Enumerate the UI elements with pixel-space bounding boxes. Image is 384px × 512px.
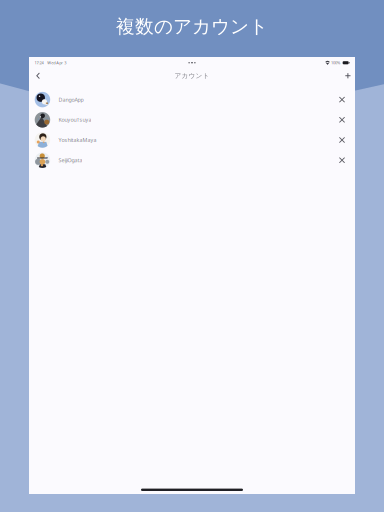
staticText: SeijiOgata [58, 157, 82, 164]
staticText: 複数のアカウント [116, 15, 268, 38]
button[interactable]: KouyouTsuya [29, 110, 355, 130]
staticText: 17:24 [35, 60, 44, 65]
button[interactable]: Add account [340, 69, 354, 83]
button[interactable]: Remove KouyouTsuya [334, 112, 350, 128]
button[interactable]: Back [31, 69, 45, 83]
button[interactable]: DangoApp [29, 89, 355, 110]
staticText: DangoApp [58, 96, 83, 103]
button[interactable]: YoshitakaMaya [29, 130, 355, 150]
staticText: Wed Apr 3 [47, 60, 66, 65]
staticText: YoshitakaMaya [58, 136, 96, 144]
button[interactable]: Multitasking controls [184, 58, 200, 67]
button[interactable]: SeijiOgata [29, 150, 355, 170]
staticText: 100% [331, 60, 340, 65]
staticText: アカウント [174, 72, 209, 80]
button[interactable]: Remove SeijiOgata [334, 152, 350, 168]
staticText: KouyouTsuya [58, 116, 91, 123]
button[interactable]: Remove DangoApp [334, 92, 350, 108]
button[interactable]: Remove YoshitakaMaya [334, 132, 350, 148]
